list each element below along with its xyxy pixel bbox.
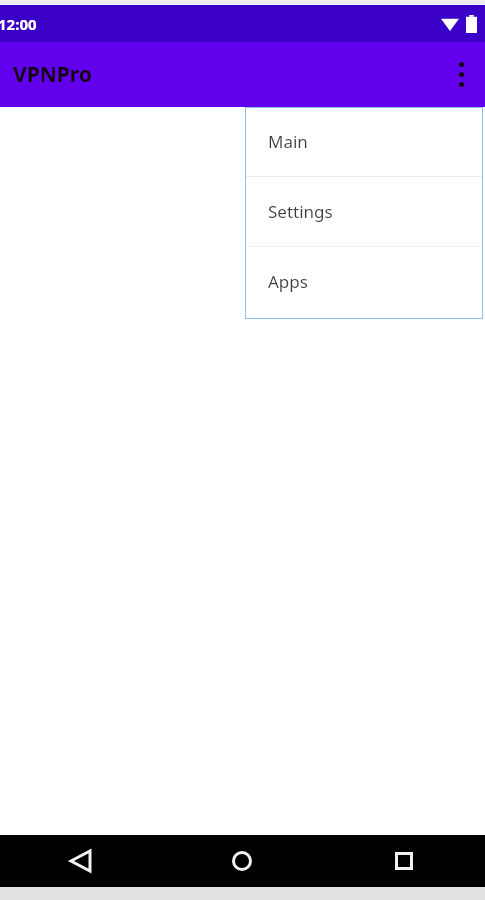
- button[interactable]: Recent apps: [323, 835, 485, 887]
- staticText: 12:00: [0, 14, 37, 34]
- button[interactable]: Apps: [245, 247, 483, 316]
- button[interactable]: Main: [245, 107, 483, 176]
- button[interactable]: Settings: [245, 177, 483, 246]
- staticText: VPNPro: [13, 60, 92, 89]
- staticText: Settings: [268, 200, 333, 223]
- staticText: Main: [268, 130, 308, 153]
- button[interactable]: Home: [161, 835, 323, 887]
- staticText: Apps: [268, 270, 308, 293]
- button[interactable]: More options: [437, 42, 485, 107]
- button[interactable]: Back: [0, 835, 161, 887]
